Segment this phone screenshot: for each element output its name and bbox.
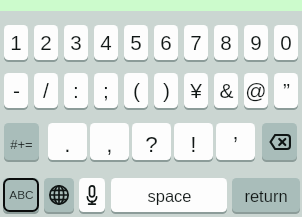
staticText: ,	[106, 132, 113, 157]
button[interactable]: space	[111, 178, 227, 212]
button[interactable]: 2	[34, 25, 58, 60]
staticText: )	[163, 79, 170, 102]
button[interactable]: Backspace	[262, 123, 297, 160]
button[interactable]: 0	[274, 25, 298, 60]
staticText: @	[245, 79, 267, 102]
staticText: .	[64, 132, 71, 157]
button[interactable]: 3	[64, 25, 88, 60]
staticText: 4	[100, 31, 112, 54]
staticText: -	[13, 79, 20, 102]
button[interactable]: &	[214, 73, 238, 108]
staticText: 3	[70, 31, 82, 54]
button[interactable]: ”	[274, 73, 298, 108]
button[interactable]: 8	[214, 25, 238, 60]
staticText: ’	[233, 132, 238, 157]
button[interactable]: #+=	[4, 123, 39, 160]
staticText: (	[133, 79, 140, 102]
button[interactable]: 7	[184, 25, 208, 60]
staticText: ¥	[190, 79, 202, 102]
staticText: ”	[283, 79, 290, 102]
button[interactable]: /	[34, 73, 58, 108]
staticText: 8	[220, 31, 232, 54]
button[interactable]: ’	[216, 123, 255, 160]
button[interactable]: ;	[94, 73, 118, 108]
button[interactable]: @	[244, 73, 268, 108]
staticText: :	[73, 79, 79, 102]
button[interactable]: 1	[4, 25, 28, 60]
button[interactable]: Voice input	[79, 178, 105, 212]
staticText: 7	[190, 31, 202, 54]
staticText: 1	[10, 31, 22, 54]
button[interactable]: (	[124, 73, 148, 108]
button[interactable]: :	[64, 73, 88, 108]
staticText: 6	[160, 31, 172, 54]
button[interactable]: .	[48, 123, 87, 160]
button[interactable]: ABC	[3, 178, 39, 212]
button[interactable]: ?	[132, 123, 171, 160]
button[interactable]: Change keyboard	[44, 178, 74, 212]
button[interactable]: )	[154, 73, 178, 108]
staticText: ?	[145, 132, 158, 157]
staticText: 9	[250, 31, 262, 54]
button[interactable]: !	[174, 123, 213, 160]
staticText: 0	[280, 31, 292, 54]
button[interactable]: 9	[244, 25, 268, 60]
staticText: space	[147, 187, 192, 205]
staticText: ABC	[9, 188, 34, 201]
button[interactable]: return	[232, 178, 300, 212]
button[interactable]: -	[4, 73, 28, 108]
staticText: !	[190, 132, 197, 157]
button[interactable]: 4	[94, 25, 118, 60]
staticText: ;	[103, 79, 109, 102]
staticText: 5	[130, 31, 142, 54]
button[interactable]: ,	[90, 123, 129, 160]
staticText: #+=	[10, 137, 33, 152]
staticText: 2	[40, 31, 52, 54]
staticText: /	[43, 79, 49, 102]
staticText: return	[244, 187, 288, 205]
button[interactable]: 5	[124, 25, 148, 60]
button[interactable]: 6	[154, 25, 178, 60]
button[interactable]: ¥	[184, 73, 208, 108]
staticText: &	[219, 79, 234, 102]
